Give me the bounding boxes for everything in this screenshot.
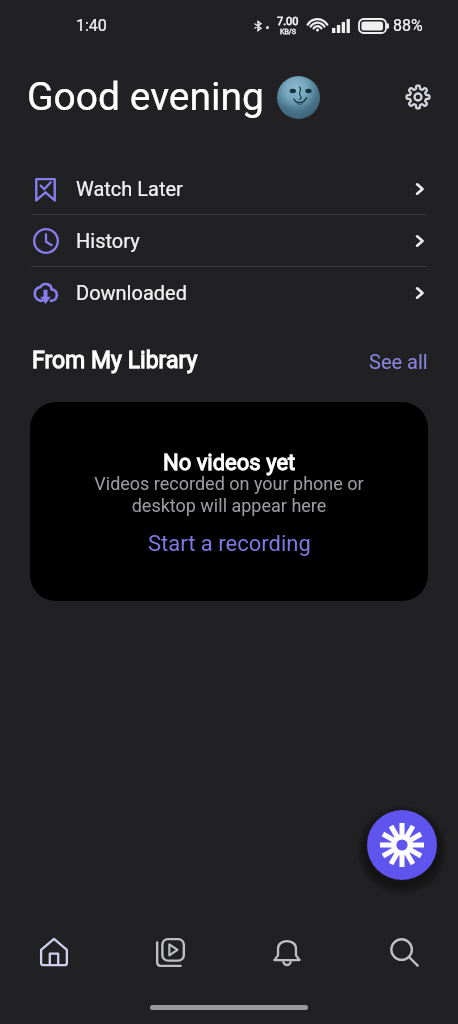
staticText: Videos recorded on your phone or desktop… [94,473,364,517]
button[interactable]: History [0,215,458,266]
staticText: KB/S [280,28,296,36]
staticText: Downloaded [76,281,187,304]
button[interactable]: Downloaded [0,267,458,318]
button[interactable]: Watch Later [0,163,458,214]
staticText: See all [369,350,428,370]
staticText: History [76,229,140,252]
staticText: 1:40 [76,16,107,35]
button[interactable]: Library [116,920,224,984]
staticText: 7.00 [277,15,299,28]
button[interactable]: Search [350,920,458,984]
staticText: Watch Later [76,177,183,200]
staticText: 88% [393,16,423,35]
button[interactable]: Start a recording [140,528,319,560]
button[interactable]: Settings [396,75,440,119]
staticText: From My Library [32,347,198,374]
staticText: Good evening [27,74,264,120]
staticText: No videos yet [163,450,296,476]
button[interactable]: Home [0,920,108,984]
staticText: Start a recording [148,531,311,557]
button[interactable]: Notifications [233,920,341,984]
button[interactable]: New recording [367,810,437,880]
button[interactable]: See all [339,342,458,378]
